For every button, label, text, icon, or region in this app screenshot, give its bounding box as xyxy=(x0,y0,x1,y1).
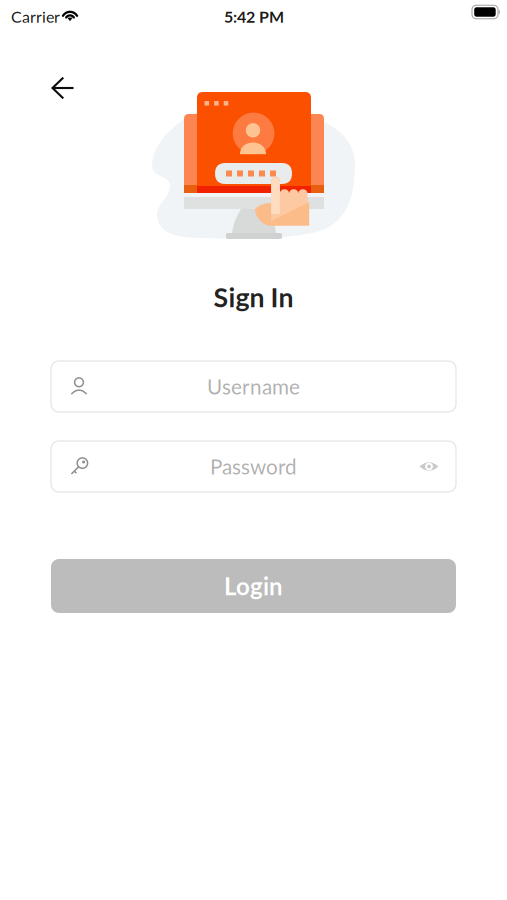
staticText: Login xyxy=(224,572,283,600)
button[interactable]: Back xyxy=(41,66,85,110)
button[interactable]: Login xyxy=(51,559,456,613)
staticText: Username xyxy=(207,374,300,399)
staticText: Carrier xyxy=(11,7,60,26)
staticText: Password xyxy=(210,454,297,479)
staticText: Sign In xyxy=(213,281,293,313)
staticText: 5:42 PM xyxy=(224,7,284,26)
